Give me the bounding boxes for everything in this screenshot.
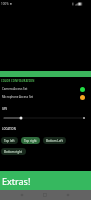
staticText: Camera Access Set [2,87,28,91]
button[interactable]: Bottom Left [43,137,66,144]
button[interactable]: Bottom right [1,148,26,155]
button[interactable]: Top left [1,137,18,144]
button[interactable]: Top right [21,137,40,144]
staticText: Bottom Left [46,139,63,143]
staticText: LOCATION [2,127,16,131]
staticText: Top left [4,139,15,143]
button[interactable]: Camera Access Set [0,85,91,93]
button[interactable] [0,113,91,122]
staticText: Bottom right [4,150,23,154]
staticText: COLOR CONFIGURATION [1,79,35,83]
staticText: Microphone Access Set [2,95,34,99]
staticText: Extras! [2,175,31,187]
staticText: 100% [1,2,9,6]
staticText: Top right [24,139,37,143]
button[interactable]: Extras! [0,171,91,190]
button[interactable]: Microphone Access Set [0,93,91,101]
staticText: GPS [2,107,8,111]
